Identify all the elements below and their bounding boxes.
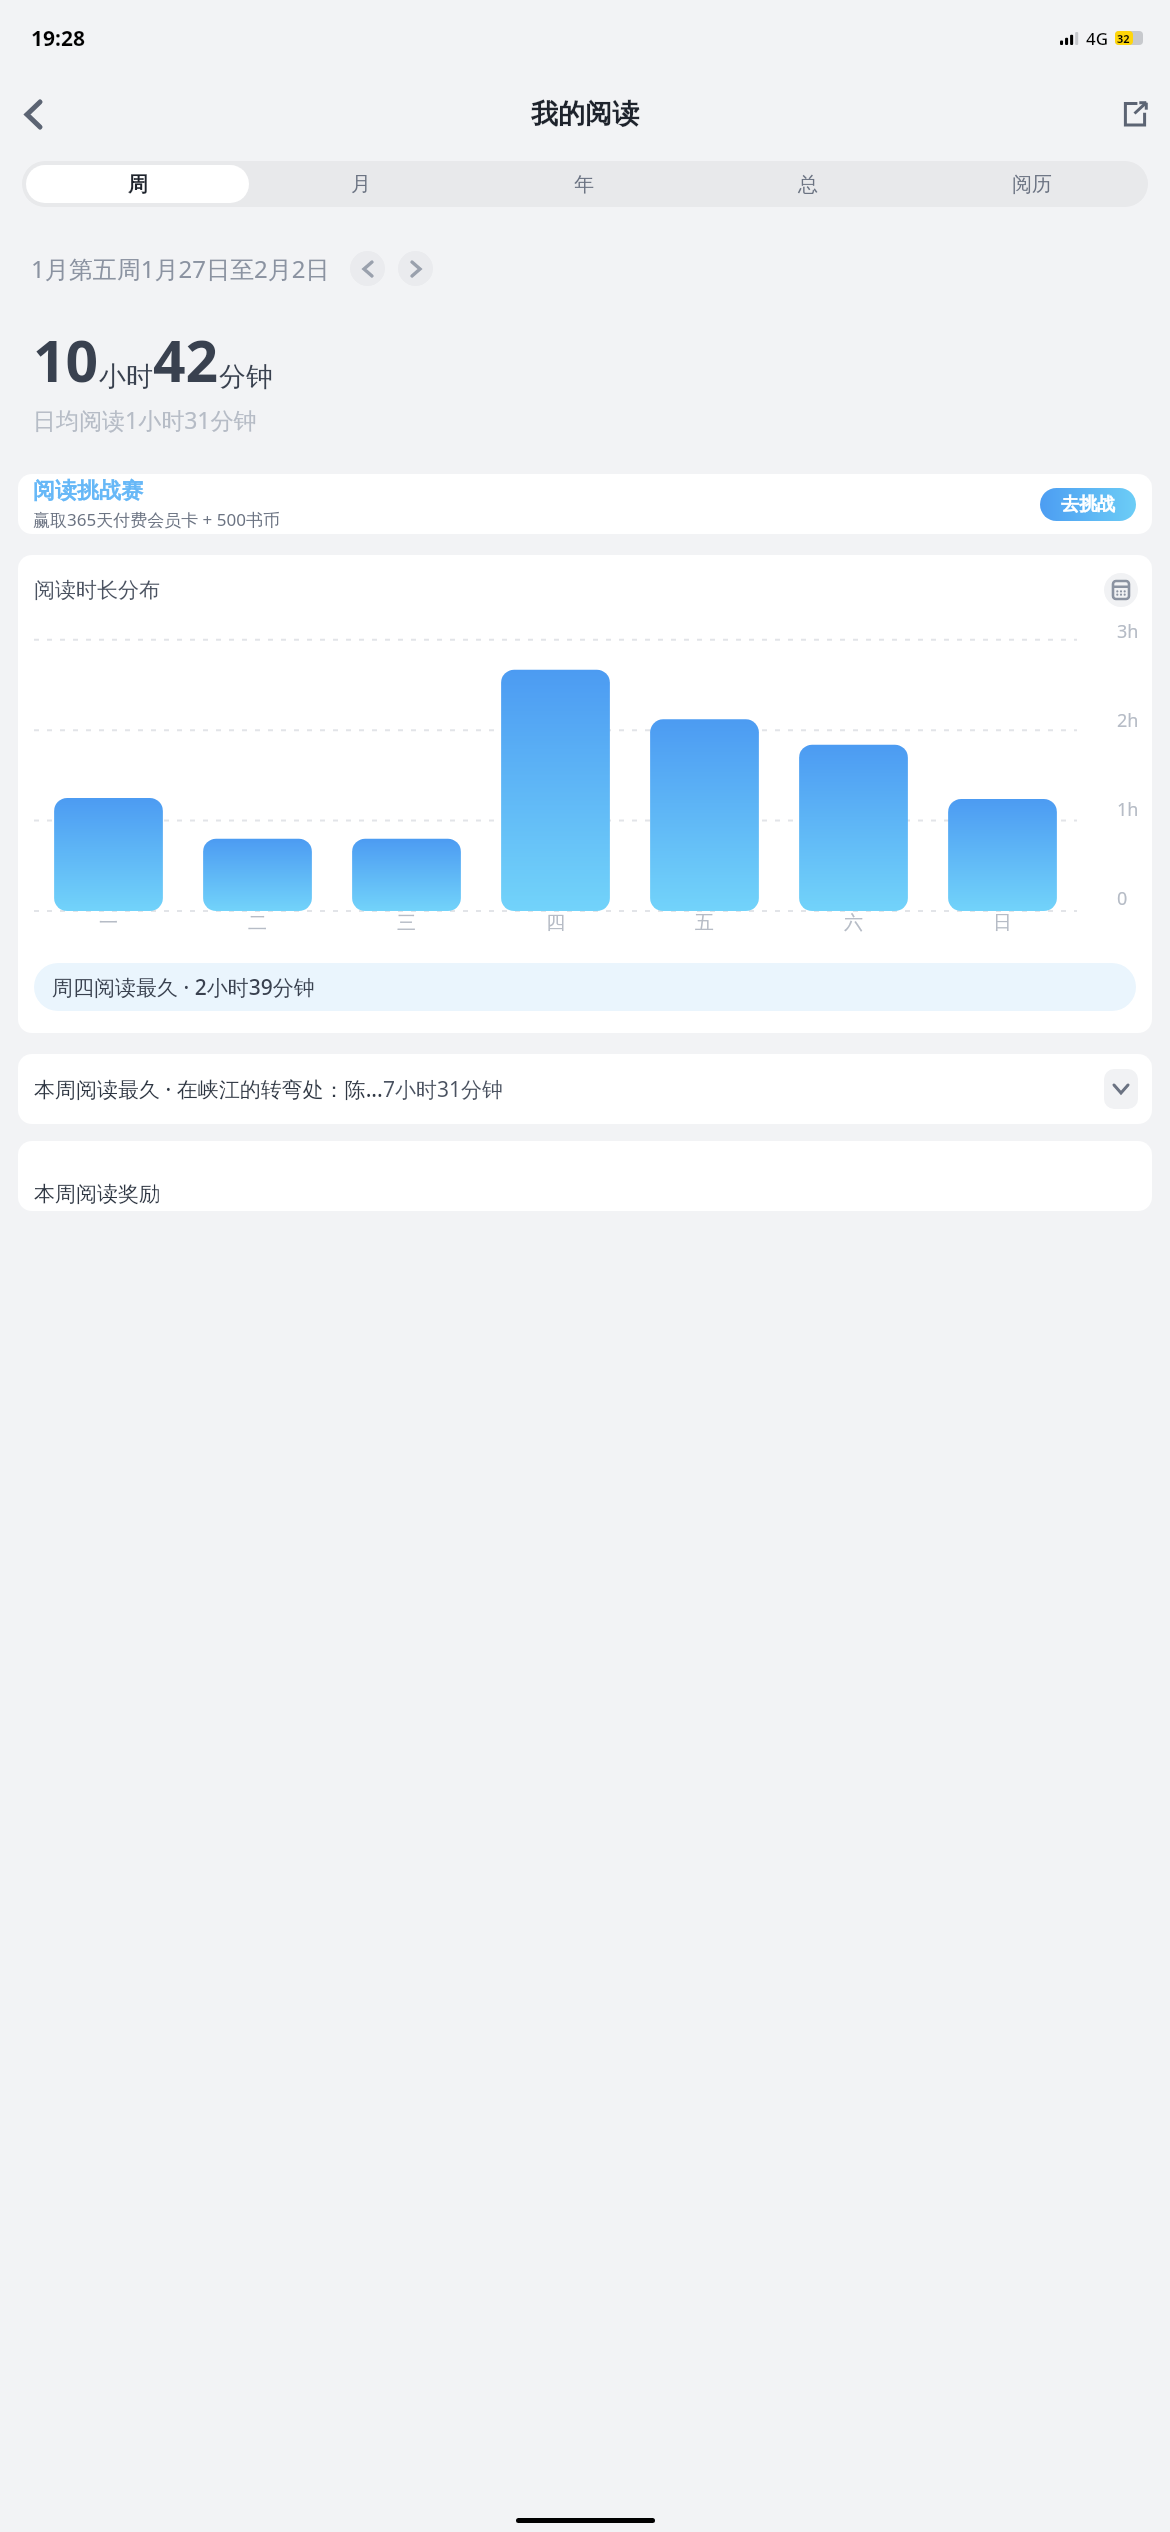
- staticText: 7小时31分钟: [383, 1075, 504, 1104]
- staticText: 月: [351, 172, 371, 197]
- button[interactable]: 阅历: [920, 165, 1144, 203]
- staticText: 阅历: [1012, 172, 1052, 197]
- staticText: 本周阅读奖励: [34, 1181, 160, 1207]
- staticText: 32: [1117, 31, 1130, 45]
- staticText: 日: [993, 911, 1012, 935]
- button[interactable]: 去挑战: [1040, 488, 1136, 521]
- staticText: 五: [695, 911, 714, 935]
- button[interactable]: Next week: [398, 251, 433, 286]
- staticText: 一: [99, 911, 118, 935]
- staticText: 去挑战: [1061, 493, 1115, 516]
- staticText: 我的阅读: [531, 97, 639, 131]
- staticText: 0: [1117, 886, 1128, 911]
- staticText: 4G: [1086, 27, 1109, 50]
- staticText: 阅读挑战赛: [33, 477, 143, 505]
- staticText: 42: [153, 321, 219, 399]
- button[interactable]: 周: [26, 165, 249, 203]
- button[interactable]: Previous week: [350, 251, 385, 286]
- staticText: 六: [844, 911, 863, 935]
- staticText: 10: [33, 321, 99, 399]
- button[interactable]: 月: [249, 165, 472, 203]
- staticText: 阅读时长分布: [34, 577, 160, 603]
- button[interactable]: 本周阅读最久 · 在峡江的转弯处：陈...: [18, 1054, 1152, 1124]
- staticText: 19:28: [31, 24, 85, 53]
- button[interactable]: 阅读挑战赛: [18, 474, 1152, 534]
- staticText: 四: [546, 911, 565, 935]
- staticText: 年: [574, 172, 594, 197]
- staticText: 3h: [1117, 619, 1139, 644]
- staticText: 赢取365天付费会员卡 + 500书币: [33, 508, 280, 531]
- staticText: 总: [798, 172, 818, 197]
- staticText: 1月第五周1月27日至2月2日: [31, 252, 330, 285]
- button[interactable]: 总: [696, 165, 920, 203]
- staticText: 小时: [99, 360, 153, 394]
- staticText: 周: [128, 172, 148, 197]
- staticText: 1h: [1117, 797, 1139, 822]
- button[interactable]: 本周阅读奖励: [18, 1141, 1152, 1211]
- button[interactable]: Calendar: [1104, 573, 1138, 607]
- staticText: 本周阅读最久 · 在峡江的转弯处：陈...: [34, 1075, 383, 1104]
- staticText: 日均阅读1小时31分钟: [33, 404, 257, 435]
- staticText: 周四阅读最久 · 2小时39分钟: [52, 973, 315, 1002]
- staticText: 二: [248, 911, 267, 935]
- button[interactable]: Back: [10, 91, 56, 137]
- staticText: 2h: [1117, 708, 1139, 733]
- staticText: 三: [397, 911, 416, 935]
- button[interactable]: Share: [1112, 91, 1158, 137]
- button[interactable]: 年: [472, 165, 696, 203]
- staticText: 分钟: [219, 360, 273, 394]
